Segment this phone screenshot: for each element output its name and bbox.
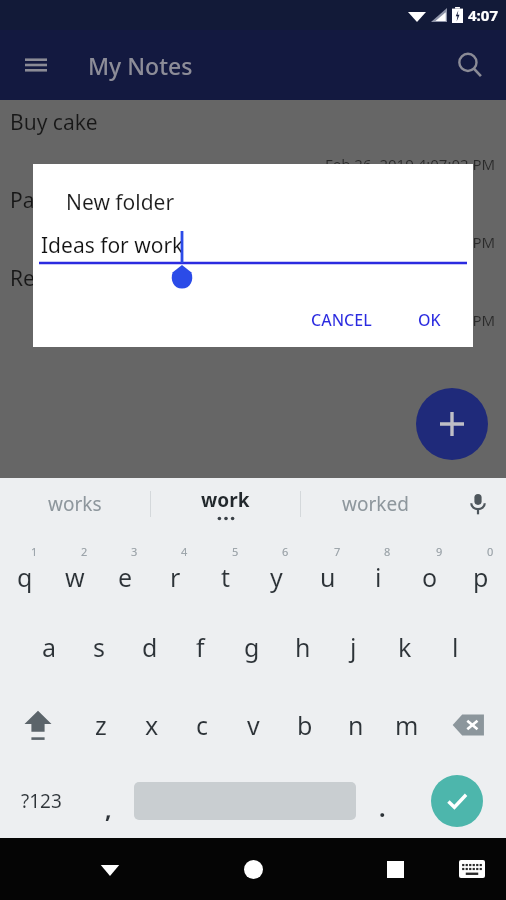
- button[interactable]: Search: [448, 43, 492, 87]
- button[interactable]: work: [151, 478, 300, 530]
- staticText: i: [375, 560, 382, 594]
- button[interactable]: c: [177, 686, 228, 764]
- button[interactable]: k: [379, 608, 430, 686]
- staticText: 5: [232, 544, 239, 559]
- button[interactable]: m: [381, 686, 432, 764]
- button[interactable]: v: [228, 686, 279, 764]
- staticText: 9: [436, 544, 443, 559]
- staticText: k: [398, 630, 412, 664]
- staticText: ,: [105, 793, 112, 824]
- staticText: g: [244, 630, 260, 664]
- staticText: 1: [31, 544, 38, 559]
- button[interactable]: l: [430, 608, 481, 686]
- button[interactable]: Pay bills: [0, 178, 506, 256]
- button[interactable]: 4: [150, 530, 200, 608]
- staticText: 3: [131, 544, 138, 559]
- button[interactable]: Backspace: [432, 686, 506, 764]
- button[interactable]: j: [328, 608, 379, 686]
- button[interactable]: Buy cake: [0, 100, 506, 178]
- button[interactable]: d: [124, 608, 175, 686]
- staticText: l: [452, 630, 459, 664]
- staticText: d: [142, 630, 158, 664]
- button[interactable]: Read book: [0, 256, 506, 334]
- staticText: z: [95, 708, 107, 742]
- button[interactable]: 6: [251, 530, 302, 608]
- button[interactable]: ,: [82, 764, 134, 838]
- staticText: r: [170, 560, 181, 594]
- button[interactable]: 1: [0, 530, 50, 608]
- button[interactable]: Done: [431, 775, 483, 827]
- staticText: Feb 26, 2019 4:06:44 PM: [325, 232, 496, 252]
- staticText: Feb 26, 2019 4:07:02 PM: [325, 154, 496, 174]
- button[interactable]: 0: [455, 530, 506, 608]
- staticText: n: [348, 708, 364, 742]
- staticText: 7: [334, 544, 341, 559]
- staticText: q: [17, 560, 33, 594]
- button[interactable]: Home: [229, 845, 277, 893]
- button[interactable]: Open navigation menu: [14, 43, 58, 87]
- staticText: Ideas for work: [41, 231, 184, 260]
- staticText: v: [247, 708, 260, 742]
- button[interactable]: ?123: [0, 764, 82, 838]
- button[interactable]: 8: [353, 530, 404, 608]
- staticText: w: [65, 560, 85, 594]
- staticText: a: [42, 630, 57, 664]
- button[interactable]: 5: [200, 530, 251, 608]
- button[interactable]: .: [356, 764, 408, 838]
- staticText: 0: [487, 544, 494, 559]
- staticText: Read book: [10, 264, 115, 293]
- staticText: My Notes: [88, 50, 193, 81]
- button[interactable]: h: [277, 608, 328, 686]
- staticText: 8: [384, 544, 391, 559]
- staticText: u: [320, 560, 336, 594]
- staticText: b: [297, 708, 313, 742]
- staticText: 4:07: [468, 5, 498, 25]
- staticText: Pay bills: [10, 186, 90, 215]
- staticText: worked: [342, 491, 409, 517]
- staticText: 6: [282, 544, 289, 559]
- button[interactable]: 2: [50, 530, 100, 608]
- button[interactable]: works: [0, 478, 150, 530]
- staticText: s: [93, 630, 105, 664]
- button[interactable]: n: [330, 686, 381, 764]
- staticText: h: [295, 630, 311, 664]
- button[interactable]: New note: [416, 388, 488, 460]
- staticText: work: [201, 487, 250, 513]
- button[interactable]: 3: [100, 530, 150, 608]
- staticText: OK: [418, 309, 441, 331]
- staticText: 2: [81, 544, 88, 559]
- button[interactable]: s: [74, 608, 124, 686]
- staticText: e: [118, 560, 133, 594]
- button[interactable]: b: [279, 686, 330, 764]
- button[interactable]: g: [226, 608, 277, 686]
- staticText: 4: [181, 544, 188, 559]
- staticText: CANCEL: [311, 309, 372, 331]
- button[interactable]: Recent apps: [371, 845, 419, 893]
- staticText: y: [270, 560, 283, 594]
- button[interactable]: a: [24, 608, 74, 686]
- staticText: j: [350, 630, 357, 664]
- button[interactable]: Back: [86, 845, 134, 893]
- staticText: t: [221, 560, 231, 594]
- button[interactable]: z: [75, 686, 126, 764]
- button[interactable]: 9: [404, 530, 455, 608]
- staticText: f: [196, 630, 205, 664]
- staticText: New folder: [66, 188, 175, 217]
- button[interactable]: Voice input: [450, 478, 506, 530]
- staticText: Feb 26, 2019 4:06:20 PM: [325, 310, 496, 330]
- staticText: Buy cake: [10, 108, 98, 137]
- staticText: o: [422, 560, 438, 594]
- staticText: ?123: [21, 788, 62, 814]
- button[interactable]: f: [175, 608, 226, 686]
- staticText: .: [379, 792, 386, 823]
- staticText: x: [145, 708, 159, 742]
- button[interactable]: Change keyboard: [450, 847, 494, 891]
- button[interactable]: x: [126, 686, 177, 764]
- button[interactable]: CANCEL: [311, 309, 372, 331]
- button[interactable]: Shift: [0, 686, 75, 764]
- button[interactable]: worked: [301, 478, 450, 530]
- staticText: works: [48, 491, 102, 517]
- button[interactable]: 7: [302, 530, 353, 608]
- button[interactable]: OK: [418, 309, 441, 331]
